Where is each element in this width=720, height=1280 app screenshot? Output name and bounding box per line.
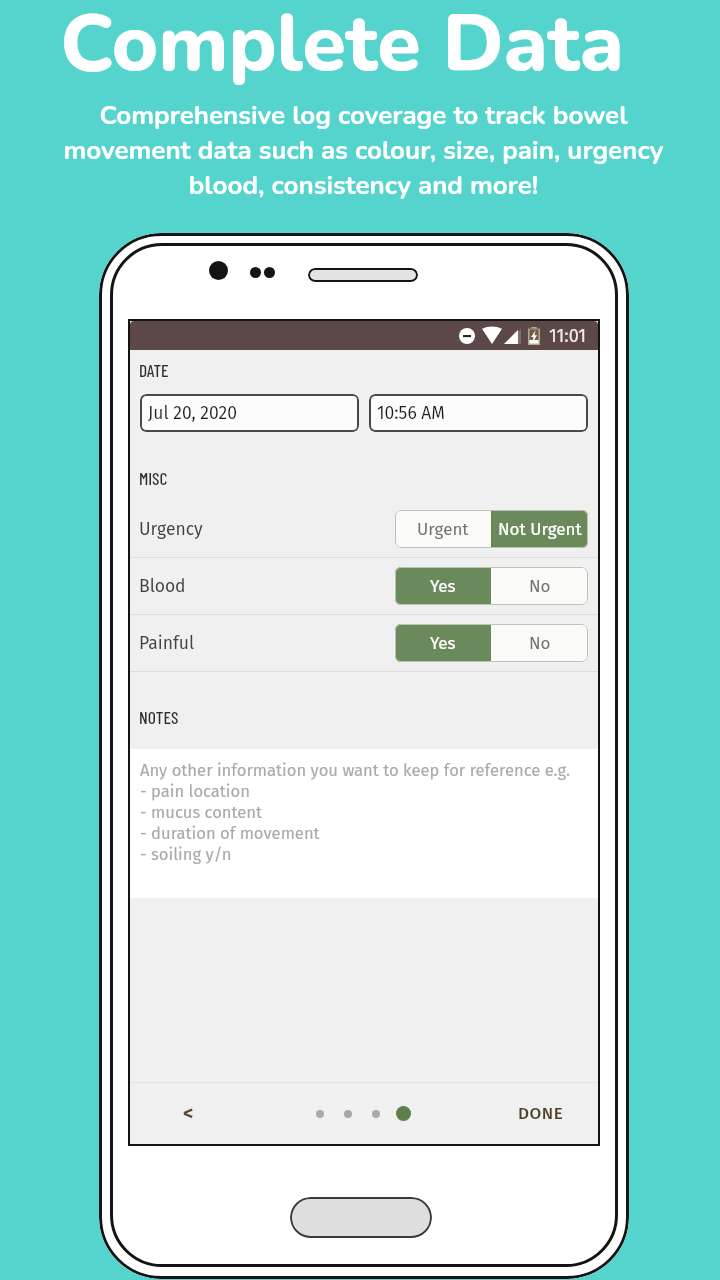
staticText: Comprehensive log coverage to track bowe… [63,98,664,203]
button[interactable]: Yes [395,567,491,605]
staticText: Jul 20, 2020 [148,403,237,424]
staticText: No [529,633,551,653]
staticText: Any other information you want to keep f… [140,760,571,864]
staticText: DONE [518,1103,564,1123]
staticText: Yes [430,576,456,596]
staticText: Not Urgent [498,519,582,539]
staticText: DATE [139,359,169,380]
staticText: Blood [139,576,186,597]
staticText: Painful [139,633,195,654]
button[interactable]: Not Urgent [491,510,588,548]
button[interactable]: Jul 20, 2020 [140,394,359,432]
button[interactable]: No [491,624,588,662]
button[interactable]: Yes [395,624,491,662]
staticText: < [183,1101,194,1125]
button[interactable]: Urgent [395,510,491,548]
staticText: NOTES [139,706,179,727]
staticText: Complete Data [60,0,624,98]
staticText: Yes [430,633,456,653]
button[interactable]: Back [170,1095,206,1131]
staticText: 11:01 [549,325,587,347]
staticText: Urgency [139,519,203,540]
button[interactable]: No [491,567,588,605]
staticText: Urgent [417,519,469,539]
staticText: No [529,576,551,596]
staticText: 10:56 AM [377,403,445,424]
button[interactable]: 10:56 AM [369,394,588,432]
button[interactable]: DONE [512,1095,570,1131]
staticText: MISC [139,467,168,488]
